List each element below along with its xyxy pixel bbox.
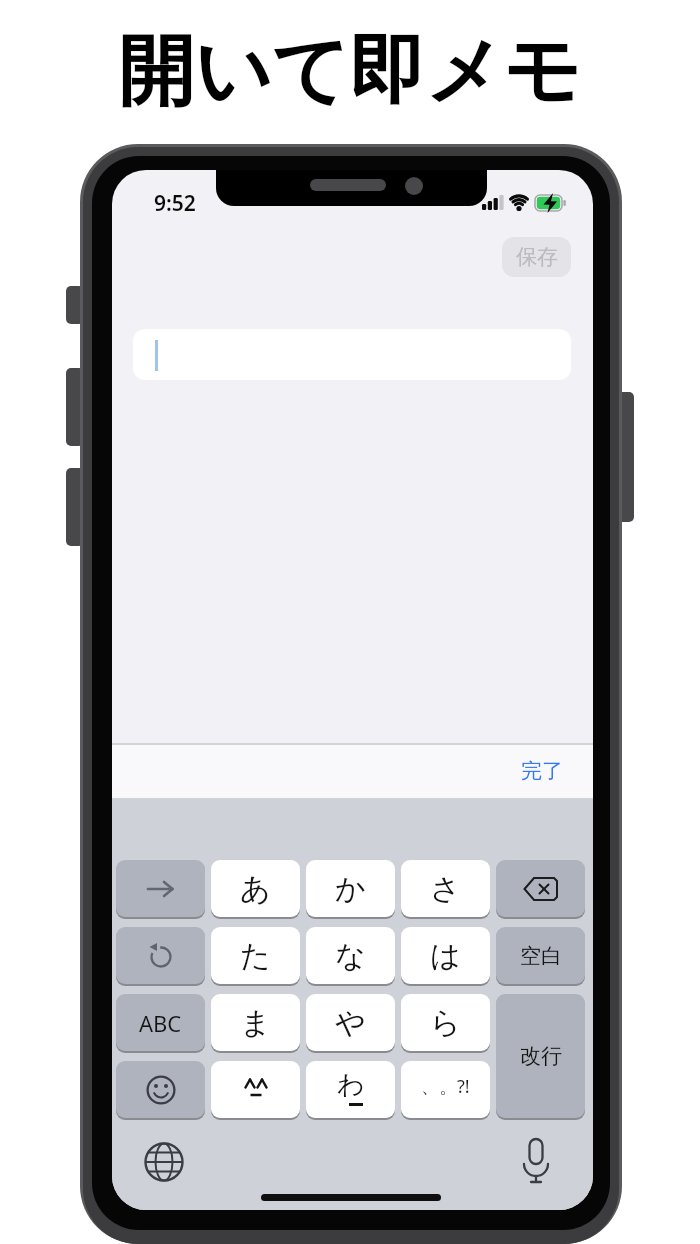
button[interactable]: さ: [401, 860, 490, 917]
staticText: ま: [240, 1004, 271, 1042]
button[interactable]: た: [211, 927, 300, 984]
button[interactable]: [116, 927, 205, 984]
button[interactable]: [133, 329, 571, 380]
staticText: た: [240, 937, 271, 975]
button[interactable]: あ: [211, 860, 300, 917]
button[interactable]: か: [306, 860, 395, 917]
staticText: ABC: [139, 1008, 182, 1038]
button[interactable]: [496, 860, 585, 917]
staticText: 開いて即メモ: [118, 24, 582, 120]
button[interactable]: [116, 1061, 205, 1118]
button[interactable]: 保存: [502, 237, 571, 277]
button[interactable]: や: [306, 994, 395, 1051]
button[interactable]: [211, 1061, 300, 1118]
button[interactable]: [140, 1136, 190, 1186]
staticText: 改行: [520, 1043, 562, 1069]
button[interactable]: [116, 860, 205, 917]
button[interactable]: ら: [401, 994, 490, 1051]
button[interactable]: わ: [306, 1061, 395, 1118]
staticText: ら: [430, 1004, 461, 1042]
staticText: 、。?!: [421, 1074, 470, 1099]
staticText: わ: [337, 1068, 365, 1102]
staticText: 保存: [516, 244, 558, 270]
button[interactable]: ま: [211, 994, 300, 1051]
staticText: か: [335, 870, 366, 908]
button[interactable]: 、。?!: [401, 1061, 490, 1118]
staticText: 空白: [520, 943, 562, 969]
staticText: 完了: [521, 758, 563, 784]
button[interactable]: は: [401, 927, 490, 984]
staticText: 9:52: [154, 189, 196, 217]
button[interactable]: な: [306, 927, 395, 984]
staticText: な: [335, 937, 366, 975]
staticText: や: [335, 1004, 366, 1042]
button[interactable]: ABC: [116, 994, 205, 1051]
button[interactable]: 空白: [496, 927, 585, 984]
button[interactable]: 改行: [496, 994, 585, 1118]
staticText: さ: [430, 870, 461, 908]
staticText: は: [430, 937, 461, 975]
button[interactable]: 完了: [504, 744, 579, 797]
button[interactable]: [512, 1136, 562, 1186]
staticText: あ: [240, 870, 271, 908]
